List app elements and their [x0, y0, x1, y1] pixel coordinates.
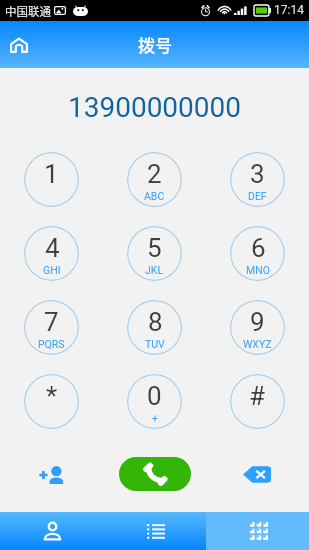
button[interactable]: # — [230, 374, 285, 429]
button[interactable]: Call log — [103, 512, 206, 550]
staticText: 3 — [250, 159, 265, 189]
button[interactable]: * — [24, 374, 79, 429]
button[interactable]: 7 — [24, 300, 79, 355]
button[interactable]: 8 — [127, 300, 182, 355]
staticText: ABC — [144, 190, 165, 202]
staticText: 0 — [147, 381, 162, 411]
button[interactable]: Dialpad — [206, 512, 309, 550]
button[interactable]: 5 — [127, 226, 182, 281]
staticText: 1 — [44, 159, 59, 189]
staticText: 8 — [148, 307, 163, 337]
button[interactable]: 4 — [24, 226, 79, 281]
button[interactable]: Contacts — [0, 512, 103, 550]
staticText: WXYZ — [243, 338, 272, 350]
staticText: TUV — [145, 338, 165, 350]
staticText: JKL — [145, 264, 164, 276]
button[interactable]: Backspace — [230, 457, 284, 491]
staticText: 中国联通 — [5, 3, 51, 20]
button[interactable]: 0 — [127, 374, 182, 429]
button[interactable]: Home — [3, 29, 35, 61]
staticText: 4 — [45, 233, 60, 263]
staticText: 9 — [250, 307, 265, 337]
staticText: 13900000000 — [0, 91, 309, 124]
staticText: * — [46, 381, 58, 411]
staticText: 17:14 — [274, 3, 304, 17]
staticText: 7 — [44, 307, 59, 337]
staticText: MNO — [246, 264, 270, 276]
staticText: 2 — [147, 159, 162, 189]
staticText: GHI — [43, 264, 61, 276]
staticText: 6 — [251, 233, 266, 263]
button[interactable]: 2 — [127, 152, 182, 207]
staticText: # — [249, 381, 266, 411]
button[interactable]: 6 — [230, 226, 285, 281]
staticText: 拨号 — [138, 32, 172, 57]
button[interactable]: 3 — [230, 152, 285, 207]
button[interactable]: Add contact — [26, 457, 80, 491]
button[interactable]: 1 — [24, 152, 79, 207]
button[interactable]: 9 — [230, 300, 285, 355]
staticText: PQRS — [38, 338, 65, 350]
staticText: 5 — [147, 233, 162, 263]
staticText: + — [152, 412, 158, 424]
staticText: DEF — [248, 190, 267, 202]
button[interactable]: Call — [119, 457, 191, 491]
